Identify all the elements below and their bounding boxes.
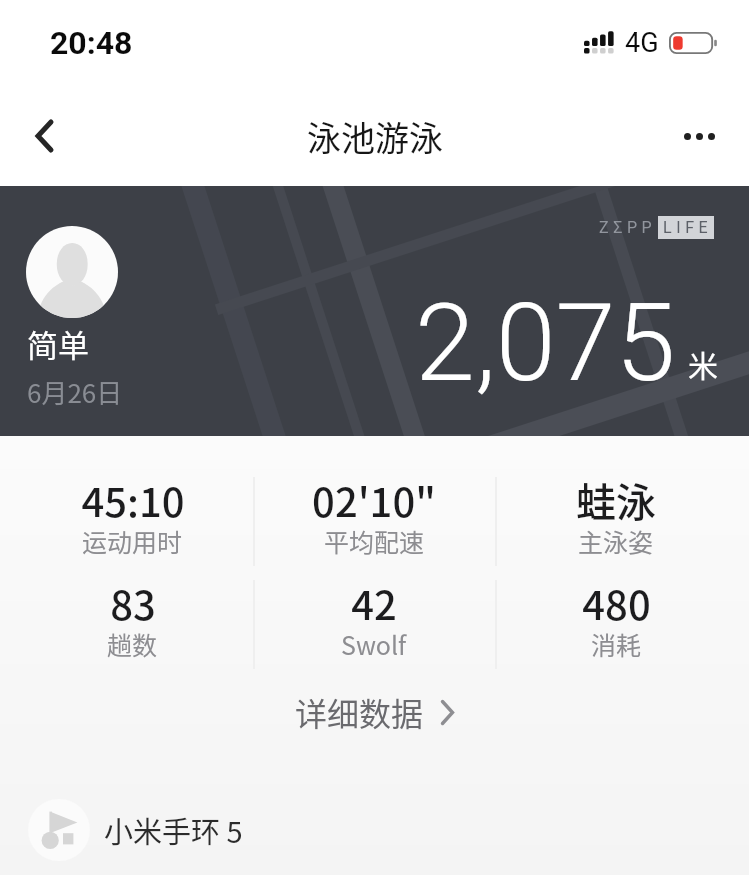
staticText: 平均配速 (324, 523, 425, 559)
staticText: 2,075 (415, 280, 676, 407)
staticText: 蛙泳 (576, 471, 656, 529)
staticText: ZΣPP (599, 218, 657, 237)
staticText: LIFE (663, 218, 713, 237)
staticText: 运动用时 (82, 523, 183, 559)
button[interactable]: Back (0, 86, 88, 186)
staticText: 趟数 (107, 626, 158, 662)
staticText: 20:48 (50, 24, 133, 62)
staticText: 泳池游泳 (307, 112, 443, 161)
staticText: Swolf (341, 626, 407, 662)
staticText: 42 (351, 574, 397, 632)
staticText: 480 (582, 574, 651, 632)
staticText: 45:10 (81, 471, 185, 529)
button[interactable]: 小米手环 5 (0, 799, 749, 861)
staticText: 02'10" (312, 471, 436, 529)
staticText: 4G (625, 27, 659, 59)
staticText: 小米手环 5 (104, 809, 243, 851)
staticText: 消耗 (591, 626, 642, 662)
staticText: 83 (110, 574, 156, 632)
staticText: 详细数据 (295, 689, 424, 735)
staticText: 简单 (27, 321, 89, 366)
button[interactable]: 详细数据 (0, 676, 749, 748)
staticText: 6月26日 (27, 373, 123, 411)
staticText: 米 (688, 342, 718, 385)
staticText: 主泳姿 (578, 523, 654, 559)
button[interactable]: More options (649, 86, 749, 186)
